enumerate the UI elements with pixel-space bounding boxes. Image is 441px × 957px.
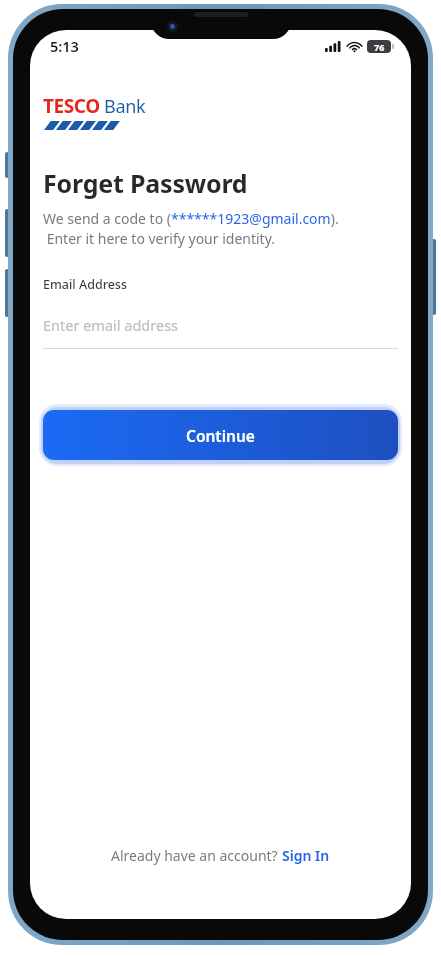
staticText: Sign In	[282, 846, 330, 865]
staticText: Continue	[186, 425, 255, 446]
staticText: 5:13	[50, 36, 79, 56]
button[interactable]: Continue	[43, 410, 398, 460]
staticText: Email Address	[43, 276, 128, 293]
staticText: Enter email address	[43, 315, 179, 335]
staticText: Bank	[104, 94, 146, 119]
staticText: We send a code to (******1923@gmail.com)…	[43, 209, 339, 249]
staticText: 76	[374, 41, 385, 53]
button[interactable]: Already have an account?	[111, 846, 330, 865]
staticText: TESCO	[43, 93, 100, 119]
staticText: Forget Password	[43, 166, 248, 200]
button[interactable]: Enter email address	[43, 315, 398, 349]
staticText: Already have an account?	[111, 846, 282, 865]
